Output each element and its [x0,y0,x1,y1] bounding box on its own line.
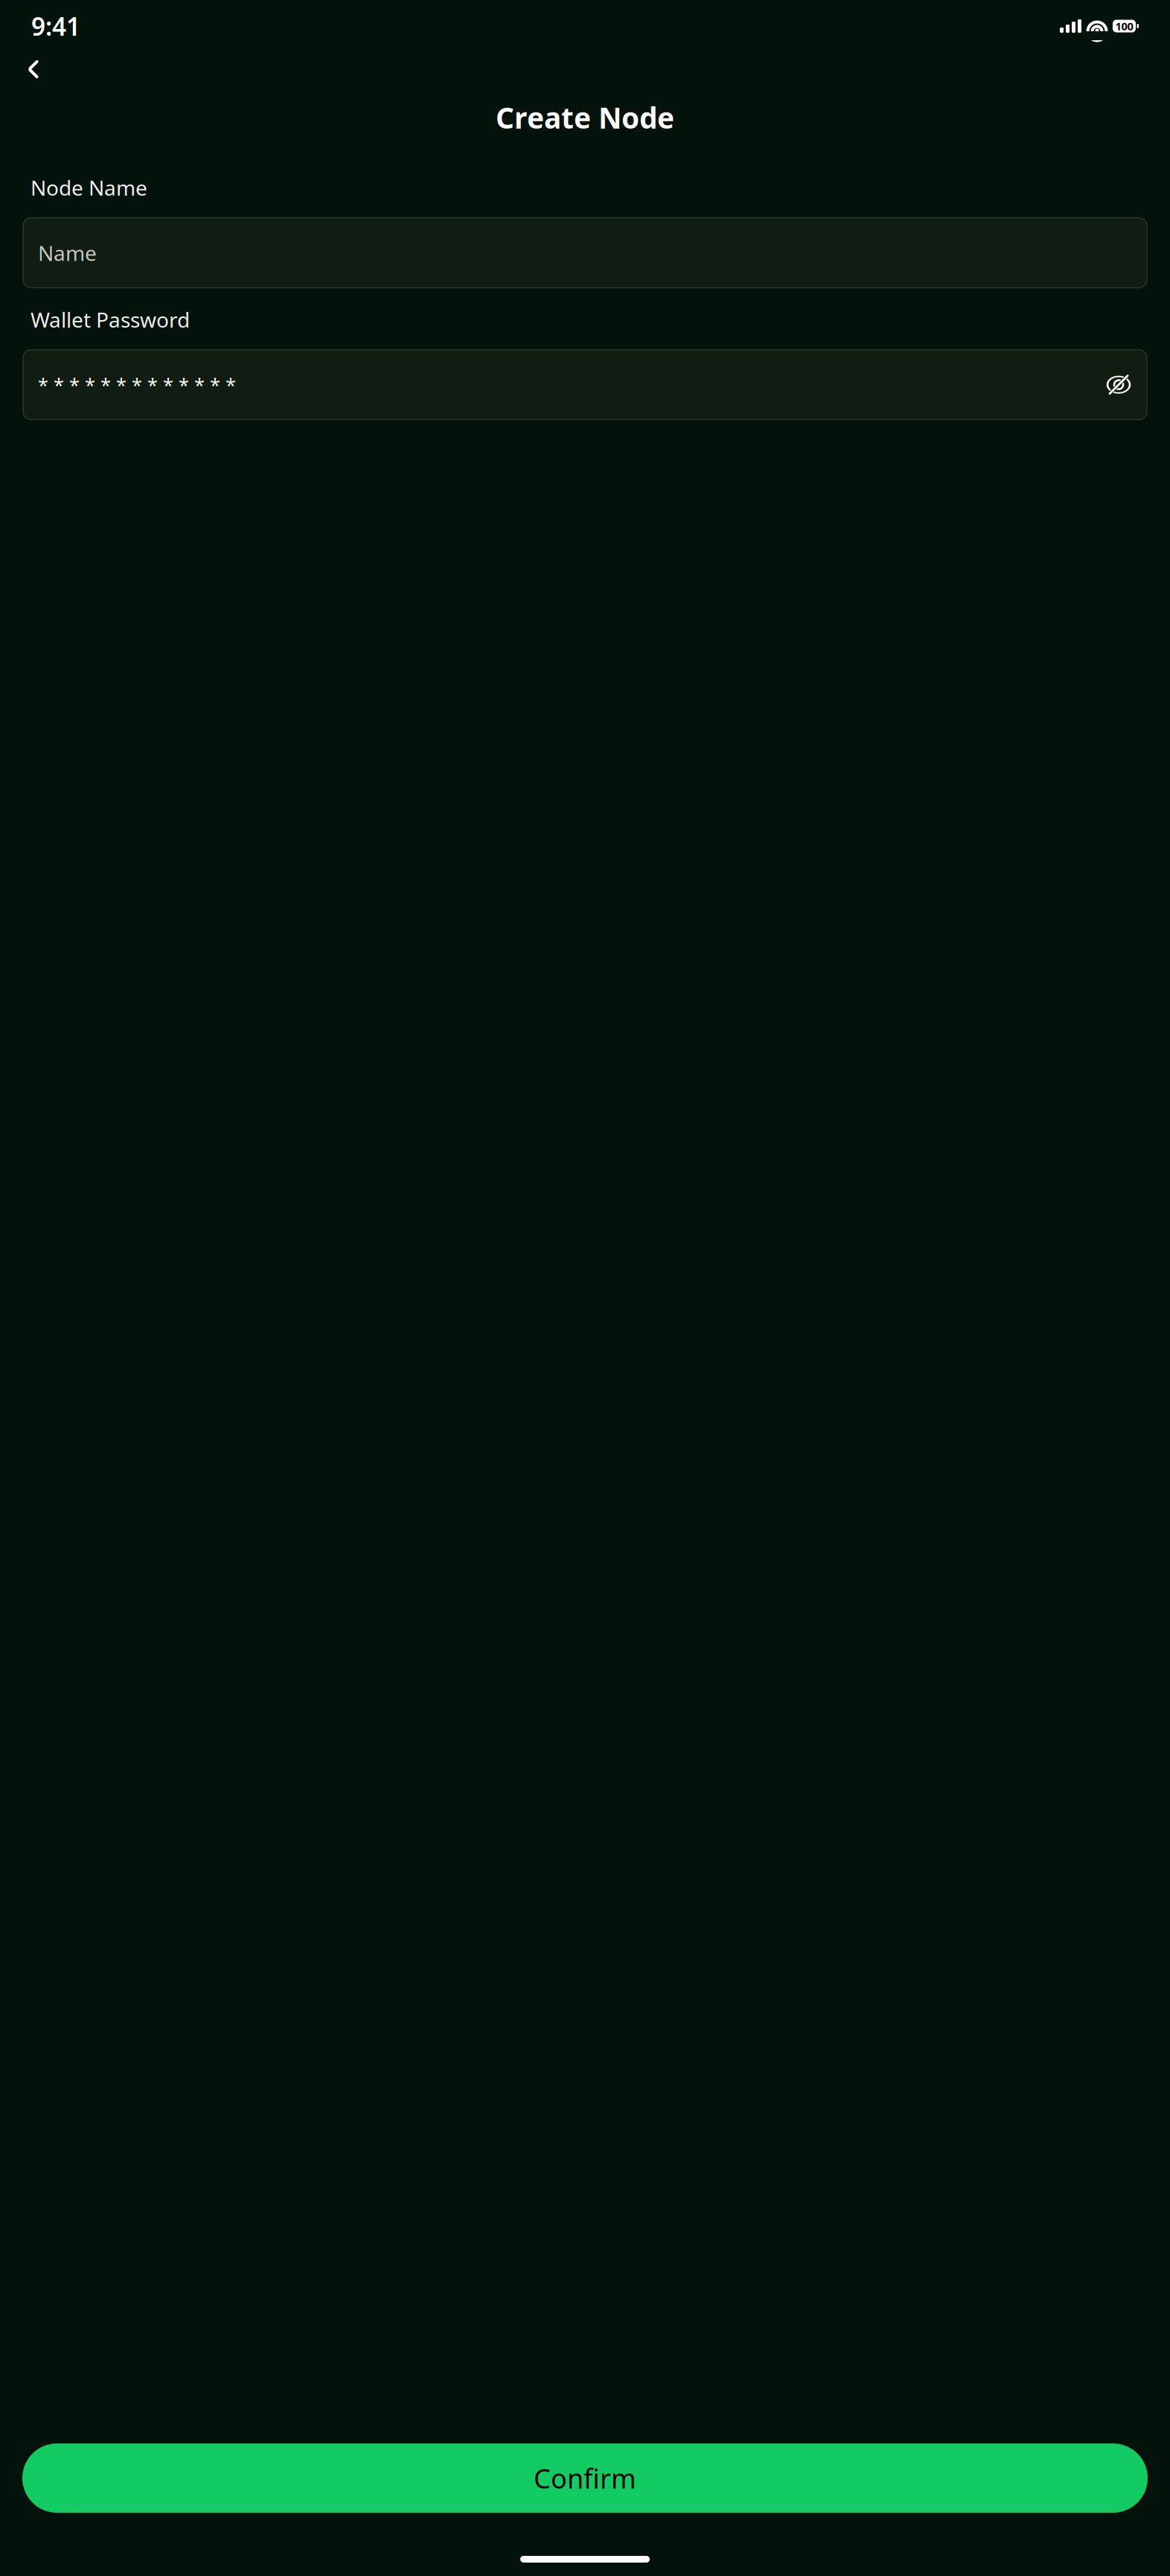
staticText: * * * * * * * * * * * * * [38,372,236,397]
staticText: 9:41 [31,10,80,43]
staticText: Create Node [496,98,674,136]
button[interactable]: Back [18,51,49,88]
button[interactable]: Confirm [22,2443,1148,2513]
button[interactable]: * * * * * * * * * * * * * [23,350,1147,420]
staticText: Name [38,239,97,267]
staticText: Node Name [31,174,147,201]
staticText: Confirm [534,2460,636,2496]
staticText: Wallet Password [31,306,190,333]
staticText: 100 [1115,19,1133,33]
button[interactable]: Name [23,218,1147,288]
